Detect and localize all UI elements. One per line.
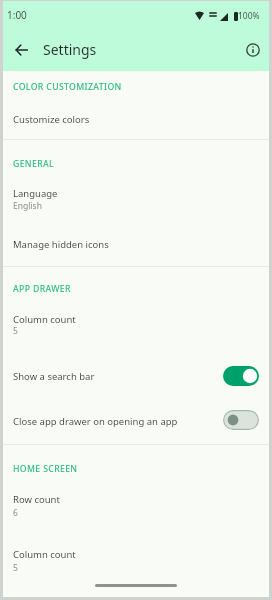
button[interactable]: Close app drawer on opening an app [0,408,272,436]
button[interactable]: Row count [0,489,272,525]
staticText: GENERAL [13,158,55,170]
button[interactable]: Column count [0,309,272,345]
button[interactable]: Show a search bar [0,363,272,391]
staticText: Manage hidden icons [13,238,109,251]
staticText: Settings [43,40,97,59]
button[interactable]: Show a search bar [223,366,259,386]
staticText: 100% [238,10,260,22]
staticText: COLOR CUSTOMIZATION [13,81,122,93]
staticText: Language [13,187,58,200]
staticText: Show a search bar [13,370,95,383]
button[interactable]: Language [0,182,272,218]
staticText: Customize colors [13,113,90,126]
button[interactable]: Back [8,37,34,63]
button[interactable]: About [240,37,265,62]
staticText: Row count [13,493,60,506]
button[interactable]: Column count [0,544,272,580]
staticText: 5 [13,325,18,337]
staticText: 5 [13,562,18,574]
staticText: 1:00 [7,8,27,22]
button[interactable]: Close app drawer on opening an app [223,410,259,430]
staticText: 6 [13,507,18,519]
button[interactable]: Manage hidden icons [0,232,272,260]
staticText: Column count [13,548,76,561]
staticText: APP DRAWER [13,283,71,295]
staticText: Close app drawer on opening an app [13,415,178,428]
staticText: English [13,200,42,212]
staticText: Column count [13,313,76,326]
staticText: HOME SCREEN [13,463,78,475]
button[interactable]: Customize colors [0,106,272,134]
